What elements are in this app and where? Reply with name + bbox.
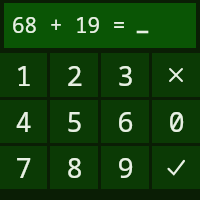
button[interactable]: 9 <box>101 146 149 189</box>
button[interactable]: 1 <box>0 53 47 97</box>
staticText: 8 <box>66 149 83 186</box>
staticText: 1 <box>15 57 32 94</box>
button[interactable]: 7 <box>0 146 47 189</box>
button[interactable]: 3 <box>101 53 149 97</box>
staticText: 9 <box>117 149 134 186</box>
staticText: 6 <box>117 103 134 140</box>
staticText: 5 <box>66 103 83 140</box>
staticText: 68 + 19 = <box>12 11 126 40</box>
staticText: 2 <box>66 57 83 94</box>
button[interactable]: 8 <box>50 146 98 189</box>
button[interactable]: 6 <box>101 100 149 143</box>
staticText: 4 <box>15 103 32 140</box>
button[interactable]: 2 <box>50 53 98 97</box>
staticText: 7 <box>15 149 32 186</box>
button[interactable]: Multiply <box>152 53 200 97</box>
button[interactable]: 0 <box>152 100 200 143</box>
staticText: 3 <box>117 57 134 94</box>
button[interactable]: 68 + 19 = <box>4 3 196 48</box>
button[interactable]: 4 <box>0 100 47 143</box>
staticText: 0 <box>168 103 185 140</box>
button[interactable]: Confirm <box>152 146 200 189</box>
button[interactable]: 5 <box>50 100 98 143</box>
